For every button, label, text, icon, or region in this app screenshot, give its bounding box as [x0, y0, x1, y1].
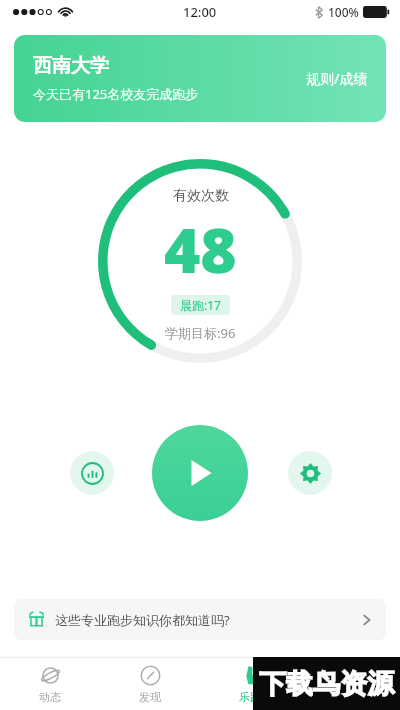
staticText: 100%: [328, 4, 359, 20]
staticText: 发现: [139, 690, 161, 704]
button[interactable]: 动态: [0, 658, 100, 710]
staticText: 规则/成绩: [306, 69, 368, 88]
button[interactable]: Statistics: [70, 451, 114, 495]
button[interactable]: 发现: [100, 658, 200, 710]
staticText: 动态: [39, 690, 61, 704]
button[interactable]: 规则/成绩: [306, 69, 368, 88]
staticText: 晨跑:17: [180, 297, 221, 313]
staticText: 下载鸟资源: [259, 667, 394, 701]
staticText: 我的: [339, 690, 361, 704]
button[interactable]: 西南大学: [14, 35, 386, 122]
button[interactable]: 这些专业跑步知识你都知道吗?: [14, 599, 386, 640]
staticText: 今天已有125名校友完成跑步: [33, 85, 199, 103]
staticText: 12:00: [183, 3, 217, 21]
staticText: 乐跑: [239, 690, 261, 704]
button[interactable]: Start run: [152, 425, 248, 521]
button[interactable]: Settings: [288, 451, 332, 495]
button[interactable]: 乐跑: [200, 658, 300, 710]
staticText: 48: [164, 207, 237, 291]
button[interactable]: 我的: [300, 658, 400, 710]
staticText: 有效次数: [173, 187, 229, 205]
staticText: 学期目标:96: [165, 324, 236, 342]
staticText: 西南大学: [33, 54, 109, 78]
staticText: 这些专业跑步知识你都知道吗?: [55, 611, 230, 629]
